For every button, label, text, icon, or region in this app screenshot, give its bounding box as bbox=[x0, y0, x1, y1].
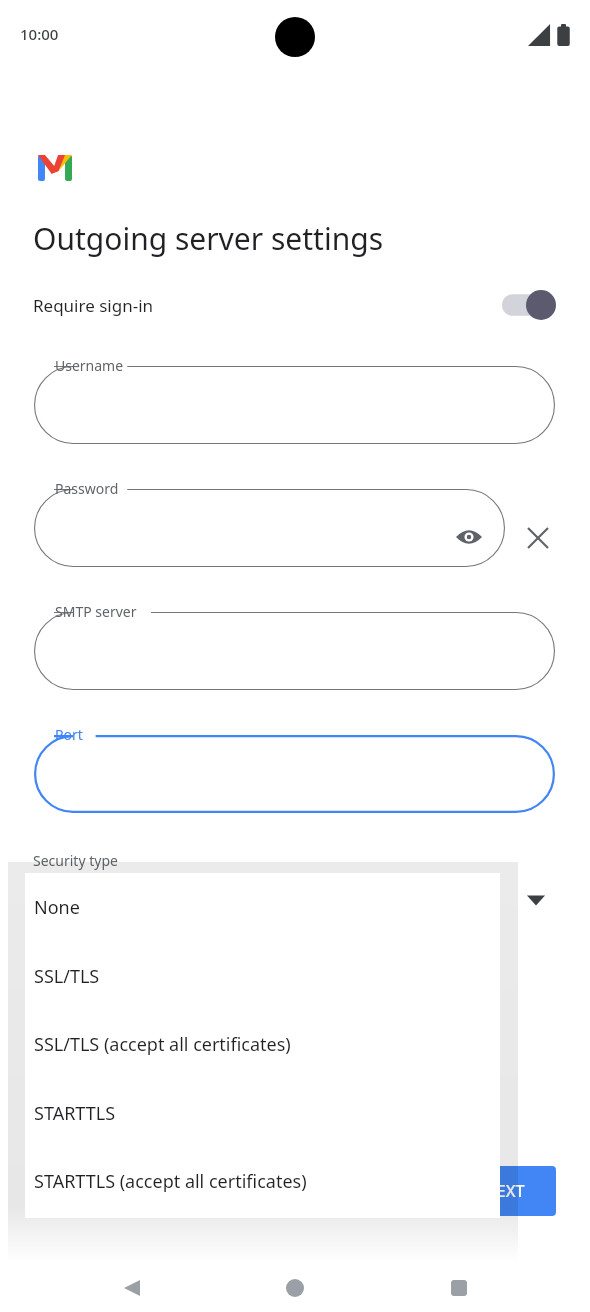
staticText: SMTP server bbox=[55, 602, 137, 621]
staticText: SSL/TLS (accept all certificates) bbox=[34, 1032, 291, 1057]
button[interactable]: Port bbox=[34, 723, 555, 813]
staticText: Require sign-in bbox=[33, 294, 154, 317]
staticText: 10:00 bbox=[20, 24, 59, 44]
staticText: Port bbox=[55, 725, 83, 744]
staticText: STARTTLS (accept all certificates) bbox=[34, 1169, 307, 1194]
button[interactable]: SMTP server bbox=[34, 600, 555, 690]
button[interactable]: Require sign-in bbox=[0, 281, 590, 329]
staticText: Outgoing server settings bbox=[33, 218, 384, 259]
staticText: SSL/TLS bbox=[34, 964, 100, 989]
button[interactable]: Back bbox=[108, 1264, 156, 1312]
button[interactable]: Password bbox=[34, 477, 505, 567]
button[interactable]: None bbox=[25, 873, 500, 942]
button[interactable]: Home bbox=[271, 1264, 319, 1312]
staticText: NEXT bbox=[484, 1180, 525, 1202]
button[interactable]: SSL/TLS (accept all certificates) bbox=[25, 1010, 500, 1079]
button[interactable]: STARTTLS bbox=[25, 1079, 500, 1148]
button[interactable]: NEXT bbox=[452, 1166, 556, 1216]
staticText: Username bbox=[55, 356, 124, 375]
button[interactable]: Username bbox=[34, 354, 555, 444]
staticText: STARTTLS bbox=[34, 1101, 116, 1126]
button[interactable]: Recent apps bbox=[435, 1264, 483, 1312]
button[interactable]: Show password bbox=[447, 515, 491, 559]
staticText: Security type bbox=[33, 851, 118, 870]
button[interactable]: Clear password bbox=[516, 516, 560, 560]
button[interactable]: STARTTLS (accept all certificates) bbox=[25, 1147, 500, 1216]
button[interactable]: SSL/TLS bbox=[25, 942, 500, 1011]
staticText: None bbox=[34, 895, 80, 920]
button[interactable]: Open security type menu bbox=[516, 880, 556, 920]
staticText: Password bbox=[55, 479, 119, 498]
